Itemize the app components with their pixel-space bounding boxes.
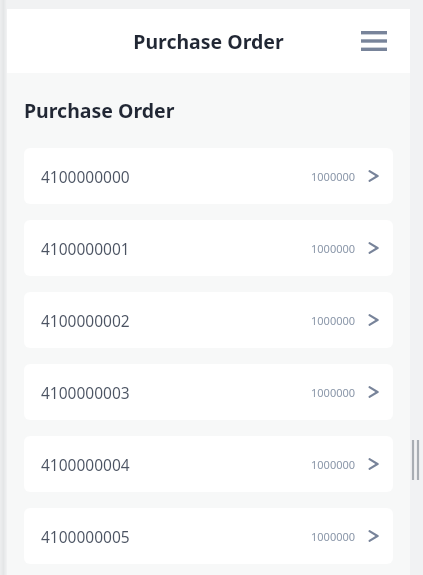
staticText: 4100000003 — [41, 382, 130, 403]
staticText: Purchase Order — [24, 97, 175, 124]
button[interactable]: 4100000003 — [24, 364, 393, 420]
staticText: 4100000000 — [41, 166, 130, 187]
button[interactable]: 4100000000 — [24, 148, 393, 204]
button[interactable]: 4100000005 — [24, 508, 393, 564]
staticText: 1000000 — [311, 169, 356, 184]
staticText: 1000000 — [311, 385, 356, 400]
staticText: 4100000001 — [41, 238, 130, 259]
staticText: Purchase Order — [133, 28, 284, 55]
staticText: 1000000 — [311, 529, 356, 544]
button[interactable]: 4100000001 — [24, 220, 393, 276]
staticText: 1000000 — [311, 457, 356, 472]
staticText: 4100000004 — [41, 454, 130, 475]
button[interactable]: 4100000004 — [24, 436, 393, 492]
staticText: 4100000002 — [41, 310, 130, 331]
button[interactable]: 4100000002 — [24, 292, 393, 348]
button[interactable]: Menu — [358, 25, 390, 57]
staticText: 1000000 — [311, 241, 356, 256]
staticText: 4100000005 — [41, 526, 130, 547]
staticText: 1000000 — [311, 313, 356, 328]
